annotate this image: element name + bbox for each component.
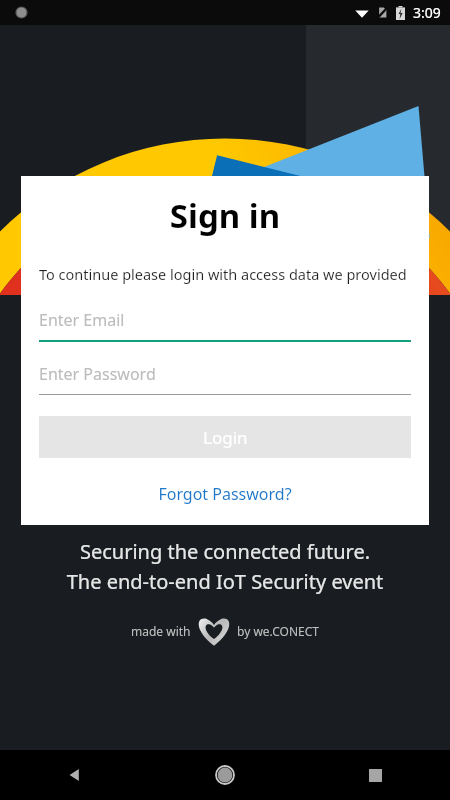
staticText: 3:09 <box>413 3 441 22</box>
button[interactable]: Forgot Password? <box>39 483 411 505</box>
staticText: The end-to-end IoT Security event <box>0 568 450 595</box>
staticText: Forgot Password? <box>39 483 411 505</box>
button[interactable]: Home <box>150 750 300 800</box>
staticText: Enter Email <box>39 309 125 331</box>
staticText: Sign in <box>39 193 411 238</box>
button[interactable]: Recent apps <box>300 750 450 800</box>
button[interactable]: Enter Password <box>39 363 411 395</box>
button[interactable]: Enter Email <box>39 309 411 342</box>
staticText: by we.CONECT <box>237 623 319 639</box>
staticText: Enter Password <box>39 363 156 385</box>
staticText: To continue please login with access dat… <box>39 264 411 284</box>
staticText: Login <box>203 426 248 449</box>
staticText: made with <box>131 623 191 639</box>
staticText: Securing the connected future. <box>0 538 450 565</box>
button[interactable]: Back <box>0 750 150 800</box>
